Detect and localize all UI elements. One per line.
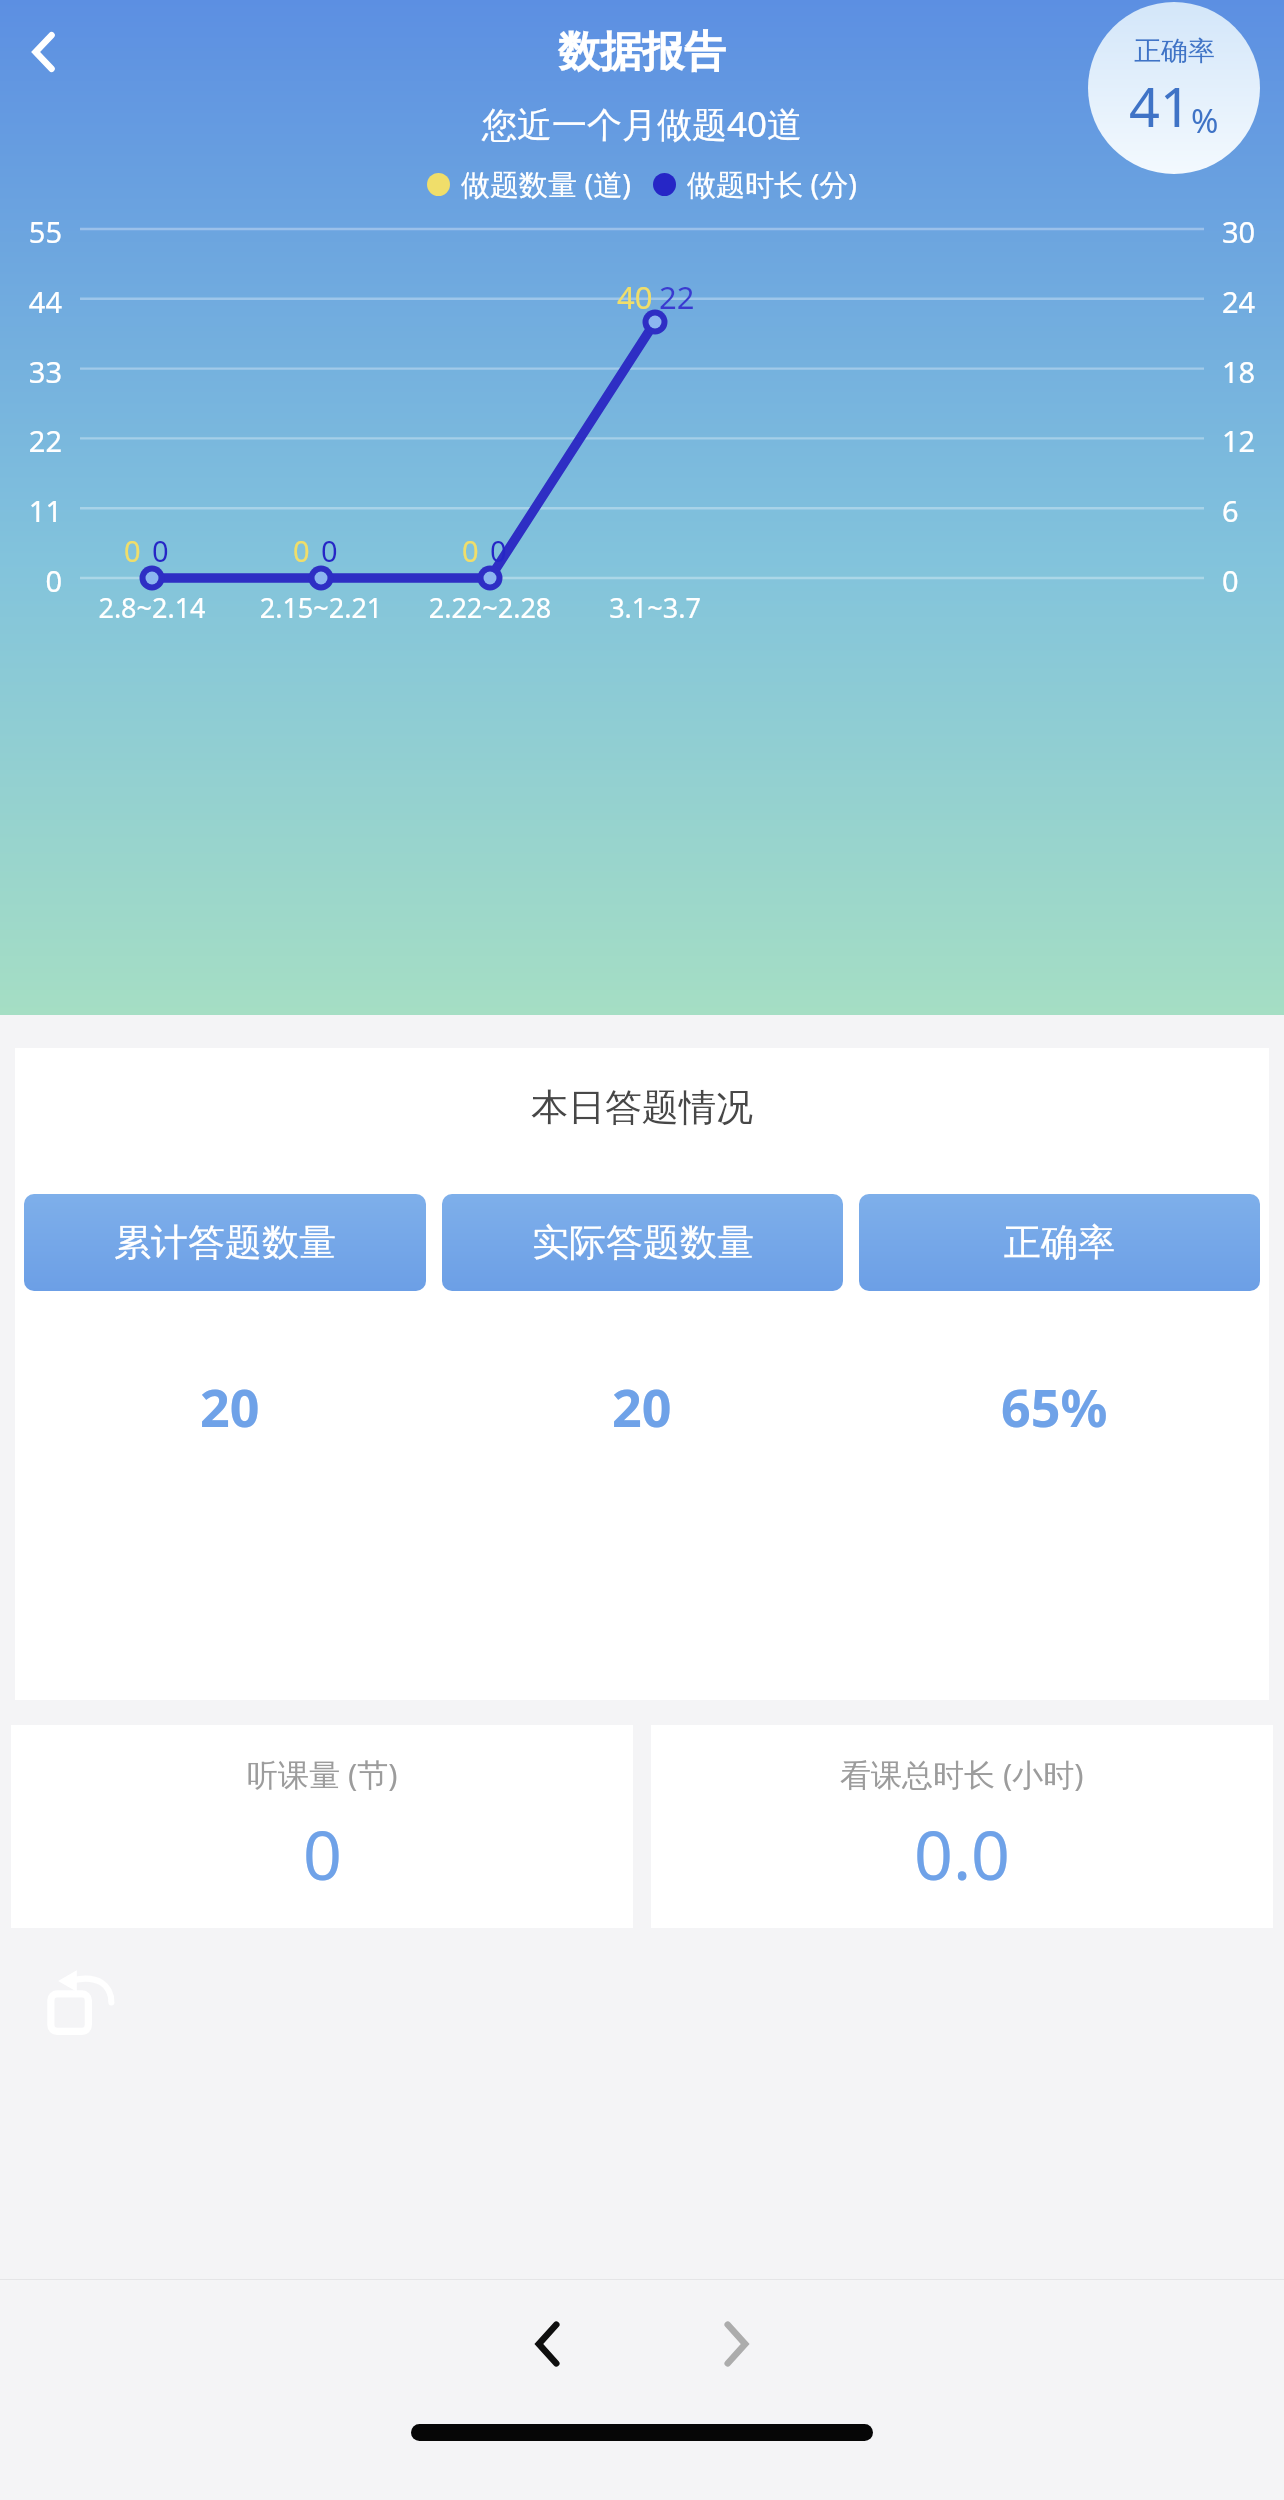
- button[interactable]: 听课量 (节): [11, 1725, 633, 1928]
- staticText: 2.22~2.28: [395, 589, 585, 626]
- staticText: 11: [14, 491, 62, 530]
- staticText: 12: [1222, 421, 1270, 460]
- button[interactable]: Rotate screen: [38, 1958, 130, 2050]
- staticText: 做题数量 (道): [461, 164, 631, 204]
- staticText: 30: [1222, 212, 1270, 251]
- staticText: 2.15~2.21: [226, 589, 416, 626]
- staticText: 33: [14, 352, 62, 391]
- button[interactable]: 实际答题数量: [442, 1194, 843, 1291]
- staticText: 0: [293, 531, 310, 570]
- staticText: 0: [490, 531, 507, 570]
- staticText: 看课总时长 (小时): [840, 1753, 1084, 1795]
- staticText: 22: [659, 276, 695, 318]
- staticText: 18: [1222, 352, 1270, 391]
- staticText: 41: [1129, 69, 1191, 143]
- button[interactable]: 正确率: [859, 1194, 1260, 1291]
- staticText: 55: [14, 212, 62, 251]
- staticText: 本日答题情况: [531, 1084, 753, 1131]
- staticText: 听课量 (节): [247, 1753, 398, 1795]
- staticText: 累计答题数量: [114, 1219, 336, 1266]
- button[interactable]: 累计答题数量: [24, 1194, 426, 1291]
- button[interactable]: Back: [4, 12, 84, 92]
- staticText: 正确率: [1134, 34, 1215, 68]
- staticText: 您近一个月做题40道: [482, 100, 803, 148]
- button[interactable]: 看课总时长 (小时): [651, 1725, 1273, 1928]
- staticText: 22: [14, 421, 62, 460]
- staticText: 24: [1222, 282, 1270, 321]
- staticText: 0: [321, 531, 338, 570]
- staticText: 3.1~3.7: [560, 589, 750, 626]
- staticText: 40: [617, 276, 653, 318]
- staticText: 正确率: [1004, 1219, 1115, 1266]
- staticText: 0: [152, 531, 169, 570]
- staticText: 做题时长 (分): [687, 164, 857, 204]
- staticText: %: [1191, 98, 1219, 143]
- staticText: 0: [124, 531, 141, 570]
- staticText: 0: [303, 1807, 342, 1900]
- staticText: 44: [14, 282, 62, 321]
- button[interactable]: 正确率: [1088, 2, 1260, 174]
- staticText: 2.8~2.14: [57, 589, 247, 626]
- staticText: 0: [1222, 561, 1270, 600]
- staticText: 20: [612, 1371, 672, 1442]
- staticText: 0: [14, 561, 62, 600]
- staticText: 6: [1222, 491, 1270, 530]
- staticText: 数据报告: [558, 26, 726, 79]
- staticText: 实际答题数量: [532, 1219, 754, 1266]
- button[interactable]: Next: [680, 2288, 792, 2400]
- staticText: 65%: [1001, 1371, 1108, 1442]
- staticText: 0: [462, 531, 479, 570]
- staticText: 20: [200, 1371, 260, 1442]
- button[interactable]: Previous: [492, 2288, 604, 2400]
- staticText: 0.0: [914, 1807, 1011, 1900]
